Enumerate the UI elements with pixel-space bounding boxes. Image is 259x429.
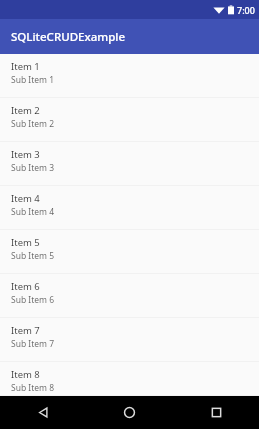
staticText: Item 4 (11, 192, 40, 205)
button[interactable]: Item 7 (0, 318, 259, 362)
button[interactable]: Item 3 (0, 142, 259, 186)
button[interactable]: Recent apps (191, 396, 241, 429)
button[interactable]: Back (18, 396, 68, 429)
button[interactable]: Item 2 (0, 98, 259, 142)
staticText: Item 3 (11, 148, 40, 161)
staticText: Sub Item 8 (11, 382, 55, 394)
staticText: Sub Item 1 (11, 74, 55, 86)
button[interactable]: Item 5 (0, 230, 259, 274)
staticText: SQLiteCRUDExample (11, 29, 126, 45)
staticText: Sub Item 7 (11, 338, 55, 350)
staticText: Item 1 (11, 60, 40, 73)
button[interactable]: Item 1 (0, 54, 259, 98)
staticText: Sub Item 6 (11, 294, 55, 306)
staticText: Sub Item 4 (11, 206, 55, 218)
staticText: Sub Item 5 (11, 250, 55, 262)
staticText: Item 8 (11, 368, 40, 381)
staticText: Sub Item 2 (11, 118, 55, 130)
button[interactable]: Item 8 (0, 362, 259, 396)
staticText: Item 2 (11, 104, 40, 117)
button[interactable]: Item 4 (0, 186, 259, 230)
staticText: Sub Item 3 (11, 162, 55, 174)
button[interactable]: Home (104, 396, 154, 429)
staticText: 7:00 (237, 4, 255, 16)
button[interactable]: Item 6 (0, 274, 259, 318)
staticText: Item 5 (11, 236, 40, 249)
staticText: Item 7 (11, 324, 40, 337)
staticText: Item 6 (11, 280, 40, 293)
